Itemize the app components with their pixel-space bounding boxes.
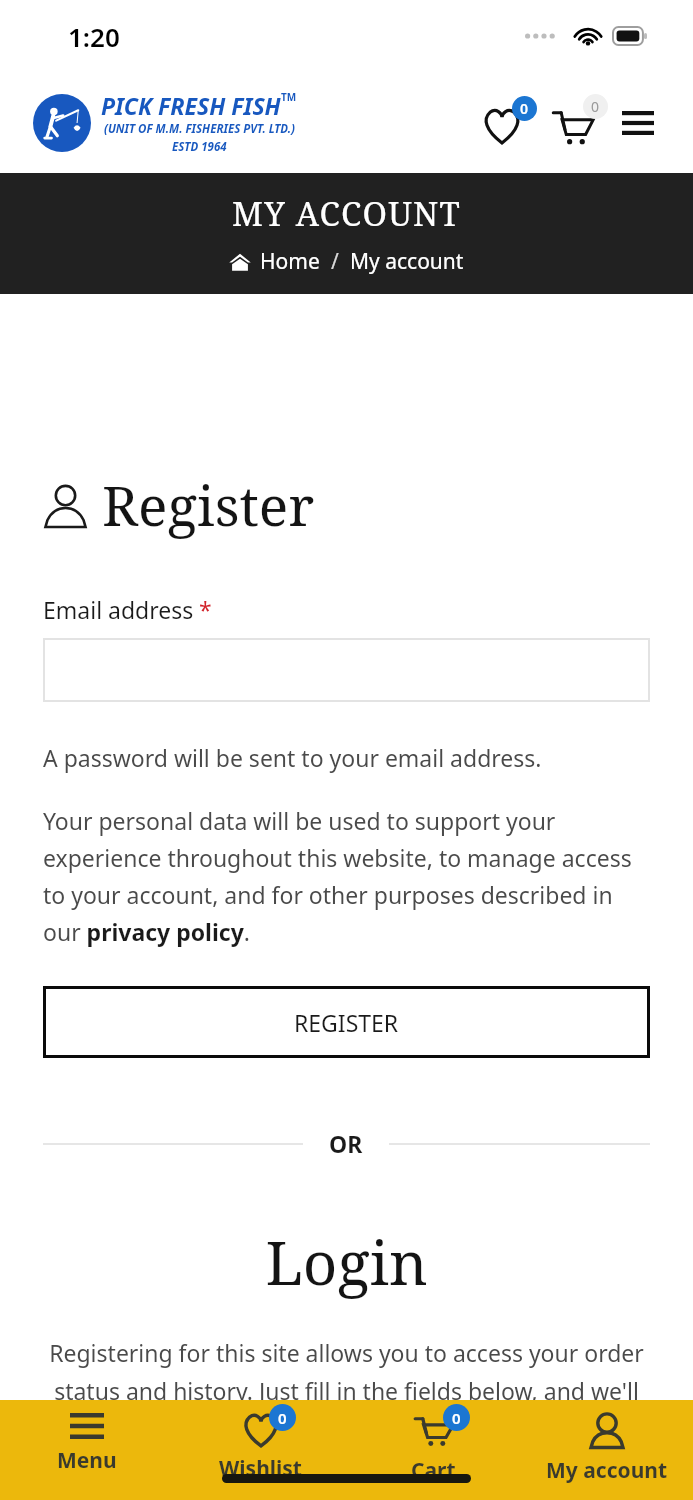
staticText: 0 — [452, 1408, 461, 1428]
staticText: A password will be sent to your email ad… — [43, 742, 542, 773]
button[interactable]: 0 — [174, 1400, 347, 1500]
staticText: Login — [43, 1221, 650, 1303]
staticText: 1:20 — [68, 19, 120, 54]
staticText: Email address — [43, 594, 194, 625]
staticText: 0 — [591, 97, 600, 116]
button[interactable] — [43, 638, 650, 702]
staticText: OR — [329, 1128, 363, 1159]
staticText: Registering for this site allows you to … — [43, 1337, 650, 1483]
staticText: 0 — [520, 99, 529, 118]
staticText: My account — [350, 247, 464, 276]
staticText: MY ACCOUNT — [232, 191, 461, 236]
button[interactable]: Menu — [611, 96, 665, 150]
staticText: Register — [102, 467, 315, 542]
button[interactable]: Menu — [0, 1400, 174, 1500]
staticText: ESTD 1964 — [172, 139, 227, 155]
staticText: (UNIT OF M.M. FISHERIES PVT. LTD.) — [104, 121, 295, 137]
staticText: / — [320, 247, 350, 276]
staticText: Your personal data will be used to suppo… — [43, 805, 650, 948]
button[interactable]: Wishlist — [477, 94, 535, 152]
staticText: PICK FRESH FISH — [101, 90, 281, 121]
staticText: Menu — [57, 1446, 117, 1475]
staticText: Wishlist — [219, 1454, 302, 1483]
staticText: REGISTER — [294, 1007, 399, 1038]
staticText: My account — [546, 1456, 668, 1485]
staticText: TM — [281, 90, 297, 104]
button[interactable]: 0 — [347, 1400, 520, 1500]
staticText: 0 — [278, 1408, 287, 1428]
staticText: * — [199, 594, 212, 625]
button[interactable]: Cart — [547, 94, 605, 152]
staticText: Cart — [411, 1456, 456, 1485]
button[interactable]: PICK FRESH FISH — [33, 90, 297, 155]
button[interactable]: REGISTER — [43, 986, 650, 1058]
button[interactable]: My account — [520, 1400, 693, 1500]
button[interactable]: Home — [260, 247, 320, 276]
